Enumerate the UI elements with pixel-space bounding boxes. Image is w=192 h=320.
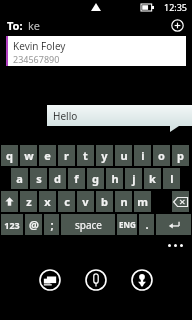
button[interactable]: To: — [0, 14, 192, 36]
button[interactable]: Enter — [156, 214, 191, 235]
button[interactable]: Attach — [83, 267, 109, 293]
staticText: f — [74, 171, 79, 186]
button[interactable]: space — [61, 214, 115, 235]
button[interactable]: d — [49, 168, 66, 189]
button[interactable]: i — [134, 145, 151, 166]
staticText: j — [132, 171, 136, 186]
staticText: ENG — [119, 219, 136, 230]
button[interactable]: e — [39, 145, 56, 166]
staticText: Hello — [53, 109, 78, 123]
button[interactable]: l — [163, 168, 180, 189]
button[interactable]: Kevin Foley — [6, 36, 186, 66]
button[interactable]: h — [106, 168, 123, 189]
staticText: ; — [50, 217, 54, 232]
staticText: @ — [29, 217, 39, 232]
staticText: 12:35 — [164, 1, 188, 13]
staticText: c — [64, 194, 70, 209]
staticText: i — [141, 148, 145, 163]
staticText: v — [82, 194, 89, 209]
staticText: u — [120, 148, 128, 163]
button[interactable]: v — [77, 191, 94, 212]
button[interactable]: c — [58, 191, 75, 212]
staticText: 234567890 — [13, 53, 60, 65]
staticText: a — [16, 171, 23, 186]
button[interactable]: Hello — [47, 105, 192, 126]
button[interactable]: z — [20, 191, 37, 212]
staticText: w — [24, 148, 34, 163]
button[interactable]: m — [134, 191, 151, 212]
staticText: s — [36, 171, 42, 186]
staticText: Kevin Foley — [13, 39, 66, 53]
button[interactable]: Backspace — [172, 191, 189, 212]
staticText: y — [101, 148, 108, 163]
staticText: ke — [28, 18, 41, 33]
button[interactable]: u — [115, 145, 132, 166]
staticText: p — [177, 148, 184, 163]
button[interactable] — [1, 191, 18, 212]
button[interactable]: 123 — [1, 214, 23, 235]
button[interactable]: More options — [165, 241, 186, 250]
button[interactable]: n — [115, 191, 132, 212]
staticText: 123 — [4, 219, 20, 231]
button[interactable]: w — [20, 145, 37, 166]
staticText: e — [44, 148, 51, 163]
staticText: n — [120, 194, 128, 209]
button[interactable]: Add contact — [168, 16, 186, 34]
staticText: To: — [7, 18, 23, 33]
button[interactable]: r — [58, 145, 75, 166]
button[interactable]: ; — [44, 214, 59, 235]
staticText: r — [64, 148, 69, 163]
button[interactable]: x — [39, 191, 56, 212]
button[interactable]: f — [68, 168, 85, 189]
button[interactable]: Send message — [37, 267, 63, 293]
staticText: x — [44, 194, 51, 209]
staticText: m — [137, 194, 148, 209]
button[interactable]: p — [172, 145, 189, 166]
button[interactable]: k — [144, 168, 161, 189]
staticText: . — [145, 217, 149, 232]
button[interactable]: Voice message — [129, 267, 155, 293]
staticText: q — [6, 148, 13, 163]
button[interactable]: o — [153, 145, 170, 166]
button[interactable]: t — [77, 145, 94, 166]
button[interactable]: g — [87, 168, 104, 189]
button[interactable]: b — [96, 191, 113, 212]
staticText: o — [158, 148, 165, 163]
staticText: z — [26, 194, 32, 209]
button[interactable]: . — [139, 214, 154, 235]
button[interactable]: @ — [25, 214, 42, 235]
button[interactable]: q — [1, 145, 18, 166]
button[interactable]: j — [125, 168, 142, 189]
button[interactable]: s — [30, 168, 47, 189]
staticText: k — [149, 171, 156, 186]
staticText: l — [170, 171, 174, 186]
button[interactable]: y — [96, 145, 113, 166]
staticText: h — [111, 171, 119, 186]
staticText: g — [92, 171, 99, 186]
staticText: space — [75, 218, 102, 232]
staticText: b — [101, 194, 108, 209]
staticText: d — [54, 171, 61, 186]
button[interactable]: ENG — [117, 214, 137, 235]
button[interactable]: a — [11, 168, 28, 189]
staticText: t — [83, 148, 88, 163]
